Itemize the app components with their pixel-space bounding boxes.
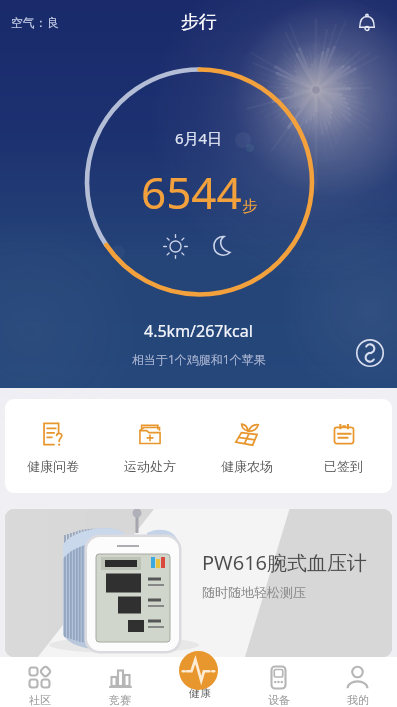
- staticText: 健康: [189, 686, 211, 700]
- staticText: 健康问卷: [27, 458, 79, 474]
- button[interactable]: 空气：良: [0, 15, 59, 30]
- button[interactable]: Mini program: [355, 338, 385, 368]
- button[interactable]: 健康农场: [198, 399, 295, 493]
- staticText: 随时随地轻松测压: [202, 584, 306, 600]
- button[interactable]: 已签到: [295, 399, 392, 493]
- button[interactable]: Night steps: [210, 234, 235, 259]
- staticText: 步行: [181, 11, 217, 34]
- button[interactable]: 健康问卷: [5, 399, 101, 493]
- staticText: 社区: [29, 693, 51, 707]
- staticText: 健康农场: [221, 458, 273, 474]
- button[interactable]: 设备: [239, 657, 318, 707]
- staticText: 4.5km/267kcal: [144, 320, 253, 342]
- button[interactable]: PW616腕式血压计: [5, 509, 392, 657]
- button[interactable]: 社区: [0, 657, 80, 707]
- button[interactable]: 竞赛: [80, 657, 160, 707]
- staticText: 相当于1个鸡腿和1个苹果: [132, 351, 266, 367]
- button[interactable]: 运动处方: [101, 399, 198, 493]
- staticText: 设备: [268, 693, 290, 707]
- staticText: 已签到: [324, 458, 363, 474]
- button[interactable]: 我的: [318, 657, 397, 707]
- staticText: 6月4日: [175, 128, 223, 148]
- button[interactable]: Notifications: [354, 10, 380, 36]
- button[interactable]: Daytime steps: [163, 234, 188, 259]
- staticText: 运动处方: [124, 458, 176, 474]
- staticText: 步: [242, 197, 257, 216]
- button[interactable]: 健康: [160, 657, 239, 707]
- staticText: 6544: [141, 162, 242, 222]
- button[interactable]: Health: [179, 651, 218, 690]
- staticText: 竞赛: [109, 693, 131, 707]
- staticText: 我的: [347, 693, 369, 707]
- staticText: PW616腕式血压计: [202, 549, 368, 576]
